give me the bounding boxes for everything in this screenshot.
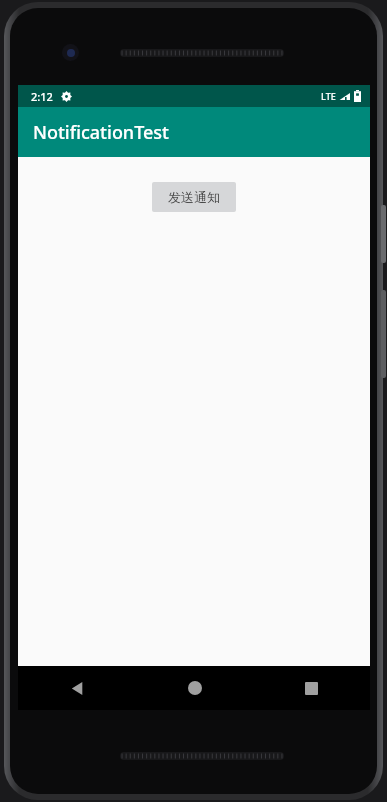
staticText: LTE — [321, 90, 336, 102]
staticText: NotificationTest — [33, 120, 169, 145]
button[interactable]: Recent apps — [253, 666, 370, 710]
button[interactable]: Back — [18, 666, 136, 710]
button[interactable]: Home — [136, 666, 253, 710]
staticText: 2:12 — [31, 89, 53, 104]
button[interactable]: 发送通知 — [152, 182, 236, 212]
staticText: 发送通知 — [168, 189, 220, 205]
